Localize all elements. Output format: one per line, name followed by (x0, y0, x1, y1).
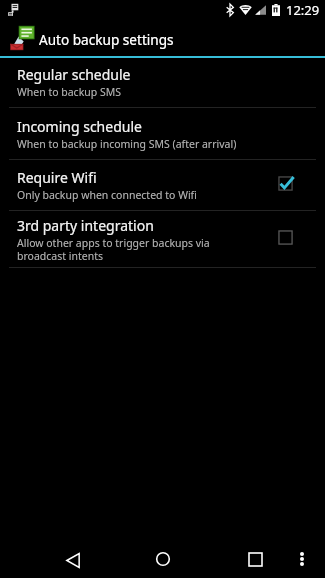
button[interactable]: Regular schedule (0, 57, 325, 107)
button[interactable]: Back (50, 537, 96, 578)
staticText: Auto backup settings (39, 30, 174, 49)
staticText: Regular schedule (17, 65, 131, 84)
button[interactable]: Incoming schedule (0, 108, 325, 159)
button[interactable]: Recent apps (232, 537, 278, 578)
button[interactable]: More options (288, 537, 316, 578)
staticText: 3rd party integration (17, 216, 154, 235)
staticText: Allow other apps to trigger backups via … (17, 236, 210, 263)
staticText: When to backup SMS (17, 85, 121, 99)
staticText: 12:29 (286, 1, 320, 19)
staticText: Require Wifi (17, 168, 97, 187)
staticText: Incoming schedule (17, 117, 142, 136)
staticText: When to backup incoming SMS (after arriv… (17, 137, 237, 151)
staticText: Only backup when connected to Wifi (17, 188, 197, 202)
button[interactable]: Home (140, 537, 186, 578)
button[interactable]: 3rd party integration (0, 211, 325, 267)
button[interactable]: Toggle setting (271, 224, 301, 254)
button[interactable]: Toggle setting (271, 170, 301, 200)
button[interactable]: Auto backup settings (0, 0, 325, 55)
button[interactable]: Require Wifi (0, 160, 325, 210)
